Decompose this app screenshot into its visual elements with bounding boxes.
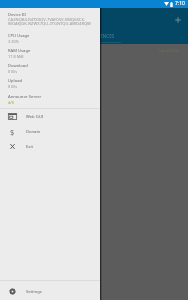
staticText: Upload bbox=[8, 78, 23, 84]
button[interactable]: Exit bbox=[0, 139, 100, 154]
staticText: Up to Date bbox=[159, 48, 180, 53]
staticText: Web GUI bbox=[26, 114, 44, 120]
button[interactable]: Web GUI bbox=[0, 109, 100, 124]
staticText: 7:10 bbox=[175, 0, 185, 7]
staticText: Exit bbox=[26, 144, 34, 150]
button[interactable]: Settings bbox=[0, 284, 100, 299]
staticText: 0 B/s bbox=[8, 84, 17, 89]
staticText: CPU Usage bbox=[8, 33, 30, 39]
staticText: Device ID bbox=[8, 12, 27, 18]
staticText: Donate bbox=[26, 129, 41, 135]
staticText: 17.8 MiB bbox=[8, 54, 24, 59]
staticText: RAM Usage bbox=[8, 48, 31, 54]
staticText: Download bbox=[8, 63, 28, 69]
staticText: CA2NQB4-R4TXXQV-7VAF05V-VMQ6XCX- bbox=[8, 17, 86, 23]
staticText: 3.30% bbox=[8, 39, 19, 44]
staticText: $ bbox=[10, 127, 15, 136]
staticText: PREFERENCES bbox=[84, 33, 115, 39]
staticText: 0 B/s bbox=[8, 69, 17, 74]
button[interactable]: Add folder bbox=[171, 13, 184, 26]
button[interactable]: $ bbox=[0, 124, 100, 139]
staticText: Announce Server bbox=[8, 94, 42, 100]
staticText: Settings bbox=[26, 289, 42, 295]
staticText: WOAKJGK-NZWX7QU-3TGNTQU-AWD4RQW bbox=[8, 21, 91, 27]
staticText: 4/5 bbox=[8, 100, 14, 105]
